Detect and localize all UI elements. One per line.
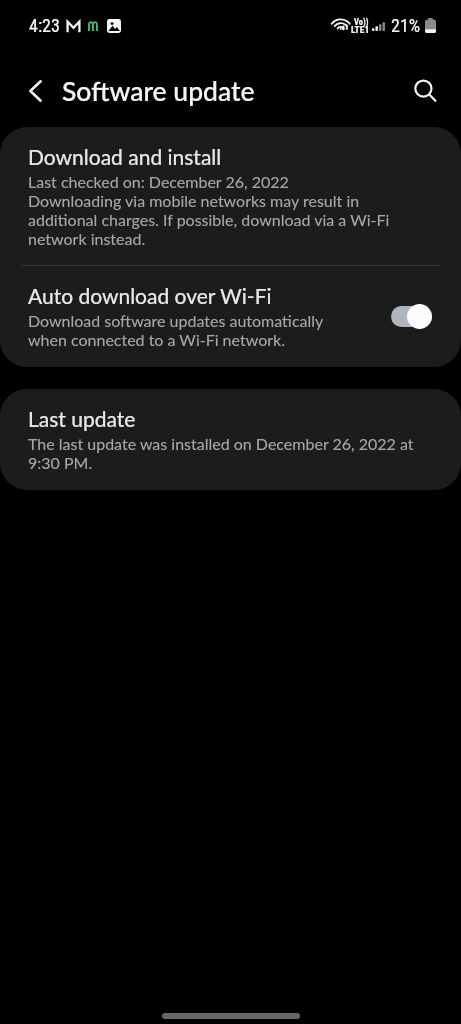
staticText: Last checked on: December 26, 2022 Downl…	[28, 172, 421, 248]
staticText: Download software updates automatically …	[28, 311, 349, 349]
staticText: Download and install	[28, 144, 222, 169]
staticText: Software update	[62, 75, 255, 107]
button[interactable]: Search	[403, 68, 448, 113]
button[interactable]: Download and install	[0, 127, 461, 265]
button[interactable]: Auto download over Wi-Fi	[391, 304, 432, 329]
staticText: Last update	[28, 406, 136, 431]
staticText: 21%	[391, 15, 421, 36]
staticText: 4:23	[29, 15, 60, 36]
button[interactable]: Last update	[0, 389, 461, 490]
staticText: Vo))	[354, 17, 369, 27]
staticText: The last update was installed on Decembe…	[28, 434, 438, 472]
button[interactable]: Navigate up	[13, 68, 58, 113]
staticText: LTE1	[351, 24, 370, 35]
staticText: Auto download over Wi-Fi	[28, 283, 272, 308]
button[interactable]: Auto download over Wi-Fi	[0, 266, 461, 367]
